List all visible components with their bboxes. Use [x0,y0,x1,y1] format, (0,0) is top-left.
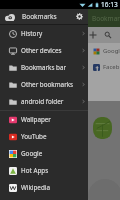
staticText: Bookmarks [22,12,57,21]
staticText: Google [103,47,120,55]
button[interactable]: Wallpaper [0,111,88,128]
staticText: Hot Apps [21,166,86,175]
button[interactable]: Other bookmarks [0,76,88,93]
button[interactable]: Bookmarks bar [0,59,88,76]
staticText: 16:13 [101,0,118,9]
staticText: Bookmarks [92,14,120,23]
staticText: Facebook [103,63,120,71]
button[interactable]: Google [0,145,88,162]
staticText: Google [21,149,86,158]
button[interactable]: Wikipedia [0,179,88,196]
button[interactable]: Hot Apps [0,162,88,179]
staticText: History [21,29,81,38]
staticText: Wallpaper [21,115,86,124]
staticText: Wikipedia [21,183,86,192]
button[interactable]: Other devices [0,42,88,59]
button[interactable]: YouTube [0,128,88,145]
staticText: YouTube [21,132,86,141]
button[interactable]: Settings [74,11,85,22]
button[interactable]: android folder [0,93,88,110]
staticText: android folder [21,97,81,106]
staticText: Other bookmarks [21,80,81,89]
staticText: Bookmarks bar [21,63,81,72]
button[interactable]: History [0,25,88,42]
staticText: Other devices [21,46,81,55]
